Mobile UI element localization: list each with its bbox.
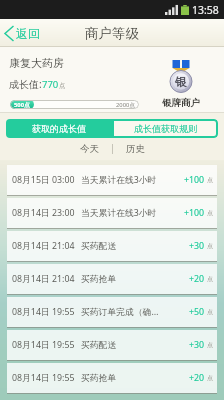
button[interactable]: 获取的成长值 [6,119,112,138]
staticText: 点 [207,176,213,184]
staticText: 08月14日 23:00 [12,207,75,219]
staticText: +30 [189,240,205,252]
staticText: 买药订单完成（确… [81,306,159,318]
staticText: 08月14日 21:04 [12,273,75,285]
staticText: 点 [207,275,213,283]
staticText: 08月15日 03:00 [12,174,75,186]
staticText: +50 [189,306,205,318]
staticText: 点 [59,82,66,90]
staticText: 今天 [80,143,99,155]
staticText: 500点 [14,101,30,109]
staticText: 点 [207,341,213,349]
button[interactable]: 08月14日 21:04 [7,264,217,294]
staticText: 770 [42,78,59,91]
button[interactable]: 08月15日 03:00 [7,165,217,195]
staticText: 获取的成长值 [32,123,86,134]
staticText: +100 [184,207,205,219]
staticText: 买药配送 [81,241,117,252]
staticText: 银 [175,75,187,89]
button[interactable]: 08月14日 21:04 [7,231,217,261]
staticText: 历史 [126,143,145,155]
button[interactable]: 08月14日 19:55 [7,297,217,327]
staticText: +100 [184,174,205,186]
staticText: 08月14日 19:55 [12,306,75,318]
staticText: 买药配送 [81,340,117,351]
staticText: 点 [207,374,213,382]
button[interactable]: 返回 [3,22,41,45]
staticText: 康复大药房 [9,56,64,70]
staticText: 银牌商户 [162,97,200,109]
staticText: 商户等级 [85,25,139,42]
button[interactable]: 08月14日 19:55 [7,330,217,360]
staticText: 买药抢单 [81,274,117,285]
staticText: +20 [189,273,205,285]
button[interactable]: 历史 [113,139,158,159]
button[interactable]: 08月14日 19:55 [7,363,217,393]
staticText: 点 [207,308,213,316]
button[interactable]: 今天 [67,139,112,159]
staticText: 2000点 [116,101,136,109]
staticText: 成长值: [9,77,42,91]
staticText: 当天累计在线3小时 [81,207,157,219]
staticText: 08月14日 19:55 [12,339,75,351]
staticText: 返回 [16,26,40,41]
staticText: 08月14日 19:55 [12,372,75,384]
button[interactable]: 08月14日 23:00 [7,198,217,228]
staticText: 点 [207,209,213,217]
staticText: 成长值获取规则 [134,123,197,134]
staticText: +30 [189,339,205,351]
staticText: 当天累计在线3小时 [81,174,157,186]
staticText: 点 [207,242,213,250]
staticText: 买药抢单 [81,373,117,384]
staticText: +20 [189,372,205,384]
button[interactable]: 成长值获取规则 [112,119,218,138]
staticText: 13:58 [192,3,219,17]
staticText: 08月14日 21:04 [12,240,75,252]
